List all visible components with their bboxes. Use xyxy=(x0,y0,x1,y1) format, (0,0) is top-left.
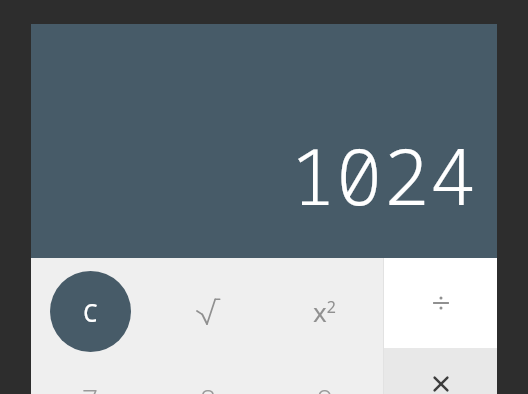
staticText: 7 xyxy=(82,380,98,394)
button[interactable]: 8 xyxy=(149,364,266,394)
button[interactable]: Divide xyxy=(384,258,497,348)
staticText: 9 xyxy=(317,380,333,394)
button[interactable]: 1024 xyxy=(31,24,497,258)
button[interactable]: Multiply xyxy=(384,348,497,394)
button[interactable]: Square root xyxy=(149,258,266,364)
button[interactable]: x2 xyxy=(266,258,383,364)
button[interactable]: C xyxy=(31,258,149,364)
button[interactable]: 7 xyxy=(31,364,149,394)
staticText: 8 xyxy=(200,380,216,394)
staticText: 1024 xyxy=(289,122,477,228)
button[interactable]: 9 xyxy=(266,364,383,394)
staticText: C xyxy=(83,295,99,329)
staticText: x2 xyxy=(313,294,336,329)
